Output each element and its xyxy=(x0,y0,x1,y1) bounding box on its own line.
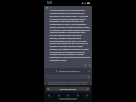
button[interactable]: Back xyxy=(44,92,54,98)
button[interactable]: Menu xyxy=(82,92,92,98)
button[interactable]: ↻ Regenerate response xyxy=(55,69,81,73)
staticText: chat.openai.com xyxy=(60,87,76,90)
button[interactable]: Tabs xyxy=(73,92,82,98)
staticText: A neural network is a computational mode… xyxy=(50,9,90,61)
staticText: ChatGPT may produce inaccurate informati… xyxy=(47,80,89,85)
staticText: 9:41 xyxy=(47,1,52,5)
button[interactable]: Bad response xyxy=(88,64,90,66)
button[interactable]: Send message xyxy=(87,76,90,78)
button[interactable]: Good response xyxy=(84,64,86,66)
button[interactable]: Site settings xyxy=(46,86,90,91)
button[interactable]: Site settings xyxy=(47,88,49,90)
button[interactable]: Send message xyxy=(45,74,90,79)
staticText: ↻ Regenerate response xyxy=(56,70,80,73)
button[interactable]: New tab xyxy=(63,92,73,98)
button[interactable]: Forward xyxy=(54,92,64,98)
button[interactable]: Reload xyxy=(87,88,89,90)
